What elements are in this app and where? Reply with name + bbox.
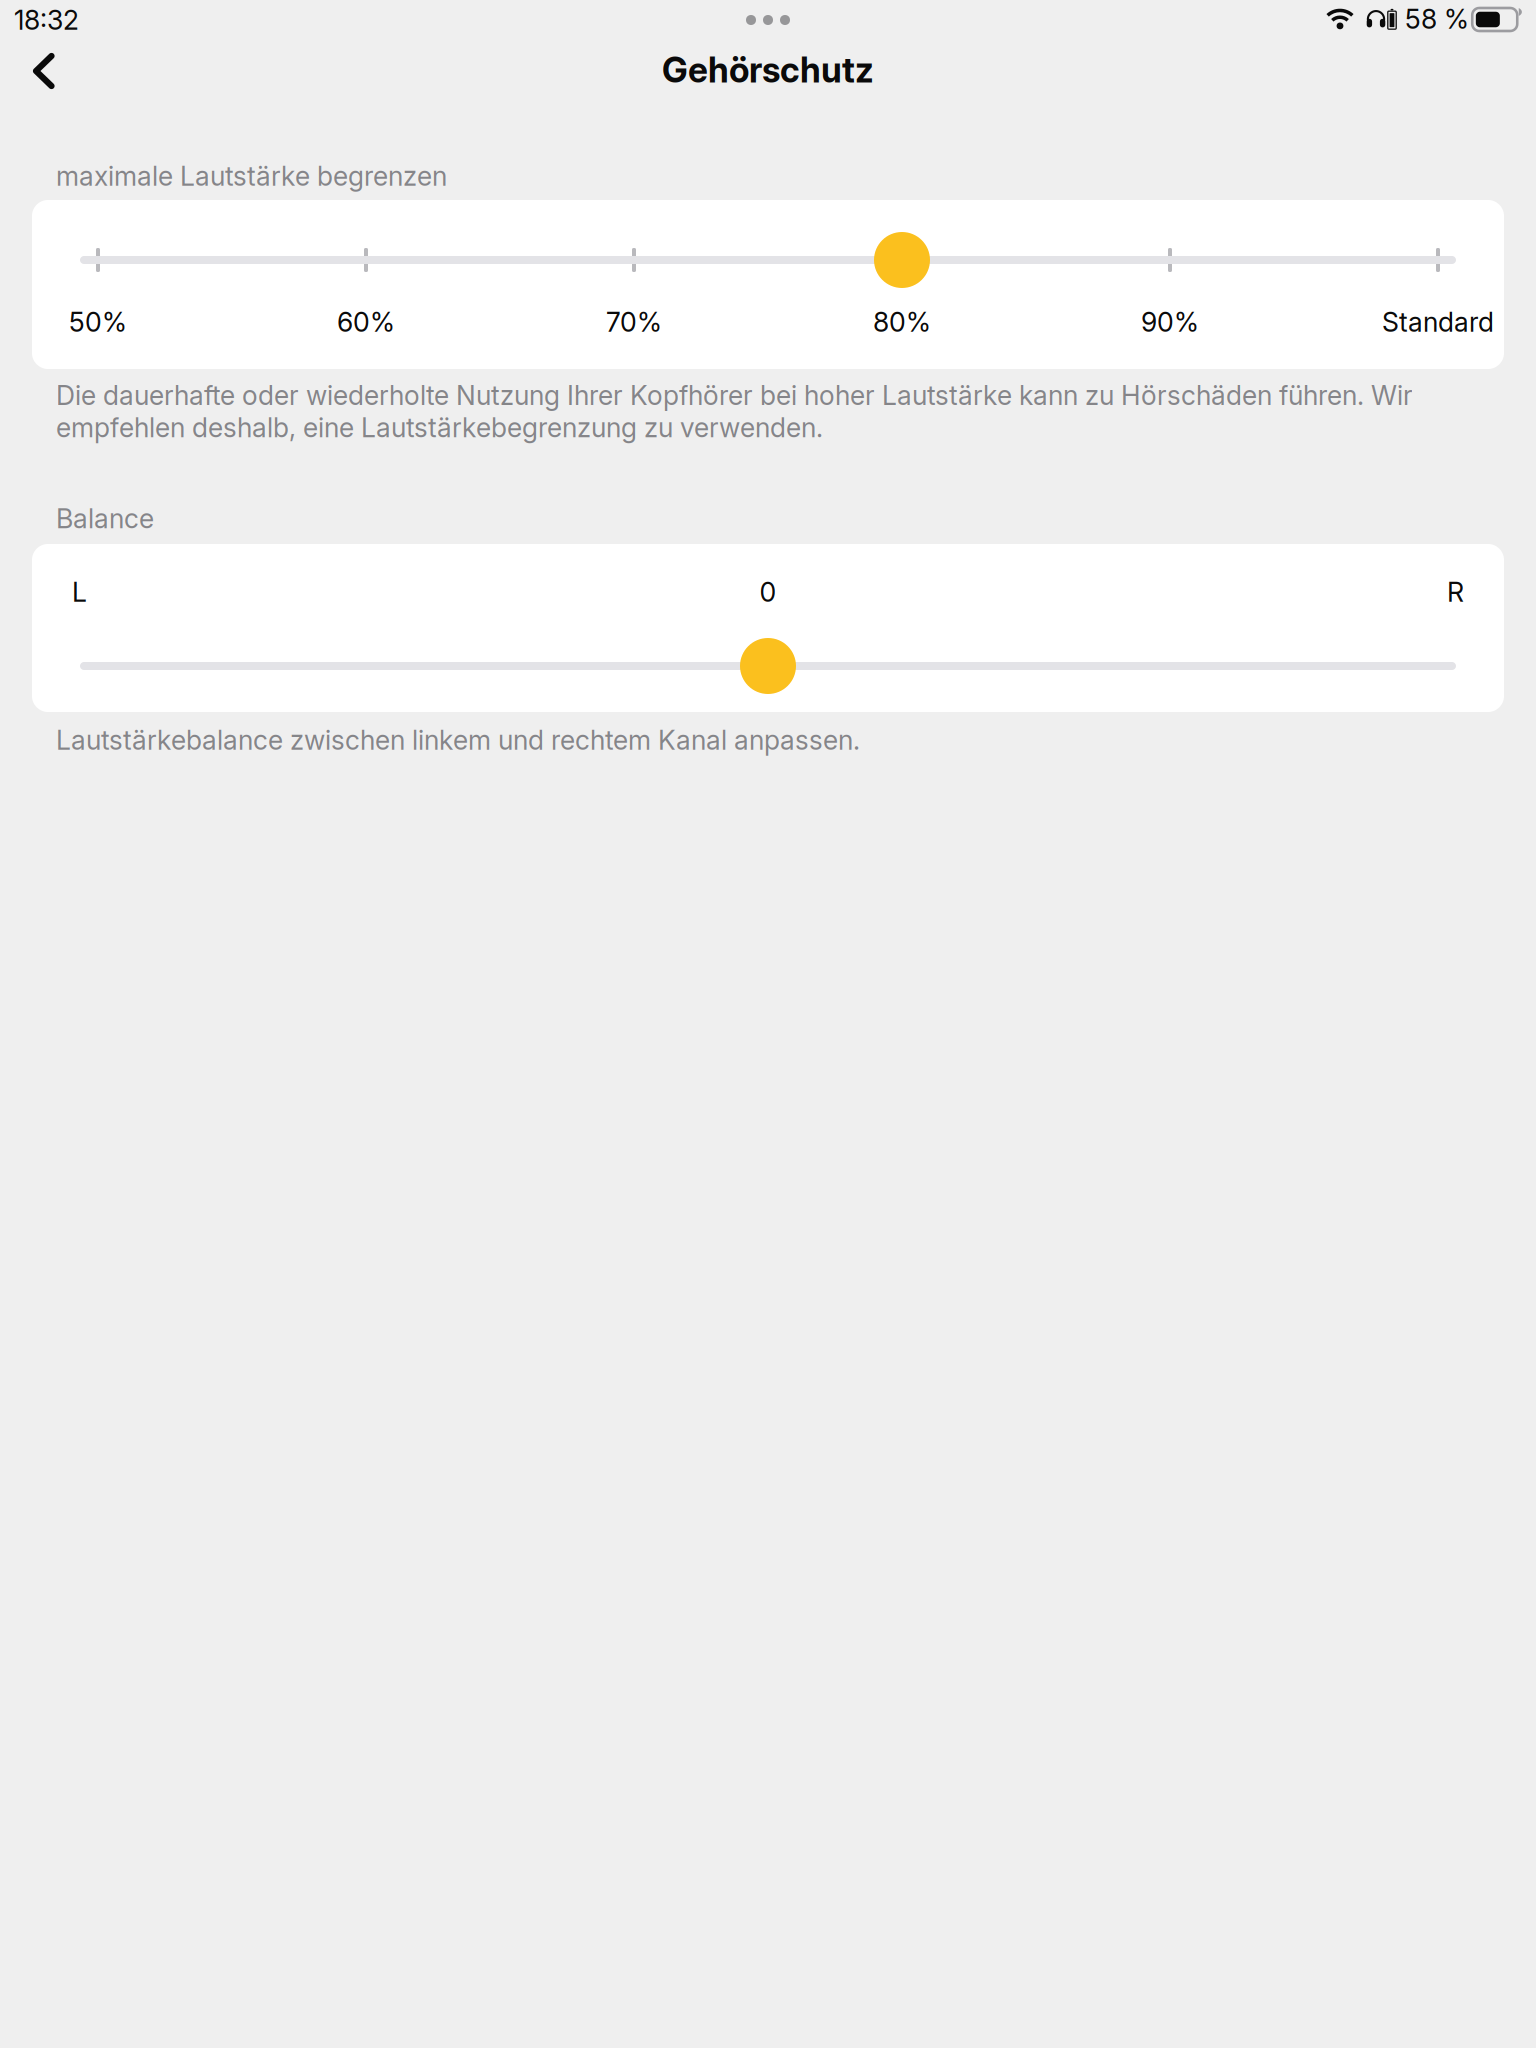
button[interactable]: L (32, 544, 1504, 712)
staticText: Die dauerhafte oder wiederholte Nutzung … (56, 379, 1413, 444)
button[interactable]: 50% (32, 200, 1504, 369)
staticText: 0 (759, 576, 776, 608)
staticText: 58 % (1405, 3, 1469, 35)
button[interactable]: Zurück (0, 27, 88, 115)
staticText: 80% (873, 306, 931, 338)
staticText: 18:32 (14, 4, 79, 36)
staticText: L (72, 576, 87, 608)
staticText: 50% (69, 306, 127, 338)
staticText: Lautstärkebalance zwischen linkem und re… (56, 724, 860, 756)
staticText: 90% (1141, 306, 1199, 338)
staticText: maximale Lautstärke begrenzen (56, 160, 447, 192)
staticText: Gehörschutz (662, 49, 874, 91)
staticText: 70% (606, 306, 662, 338)
staticText: 60% (337, 306, 395, 338)
staticText: Balance (56, 502, 154, 535)
staticText: R (1447, 576, 1464, 608)
staticText: Standard (1382, 306, 1494, 338)
